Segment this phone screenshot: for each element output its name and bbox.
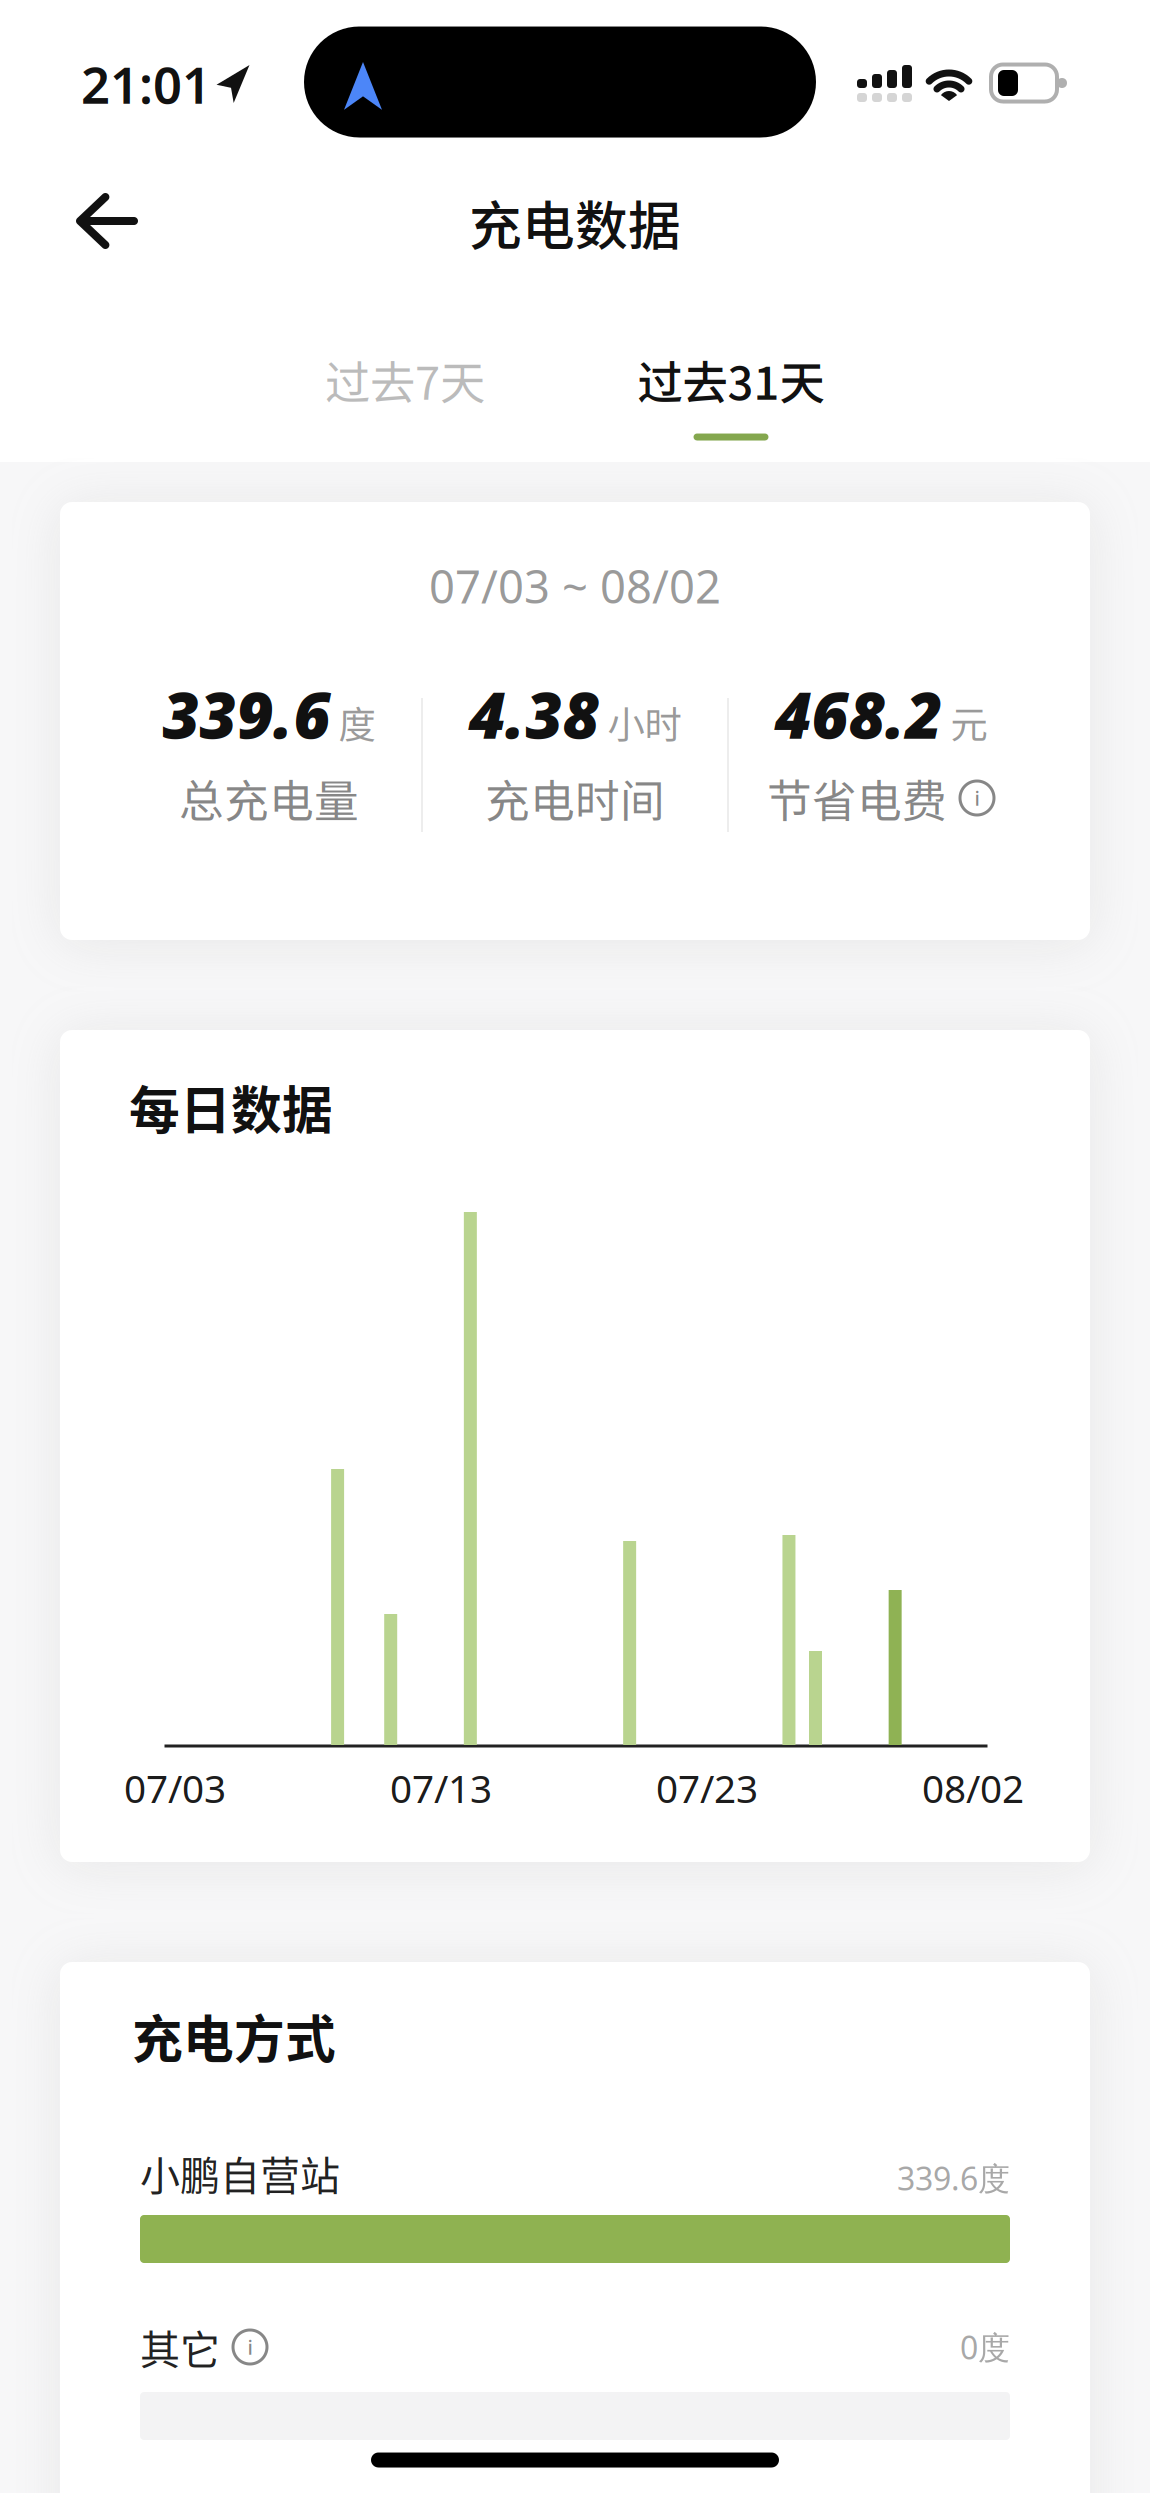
button[interactable]: 过去7天 — [325, 347, 485, 413]
staticText: 过去7天 — [325, 347, 485, 413]
staticText: 充电数据 — [469, 184, 681, 260]
staticText: 总充电量 — [179, 766, 359, 830]
button[interactable]: About other charging — [232, 2329, 268, 2365]
staticText: 充电方式 — [132, 1999, 336, 2073]
staticText: 其它 — [140, 2318, 220, 2376]
button[interactable]: About saved cost — [959, 780, 995, 816]
staticText: 小时 — [607, 695, 681, 750]
staticText: 08/02 — [922, 1762, 1024, 1814]
staticText: i — [974, 785, 979, 811]
staticText: i — [247, 2334, 252, 2360]
staticText: 07/03 ~ 08/02 — [429, 556, 721, 616]
staticText: 节省电费 — [767, 766, 947, 830]
staticText: 充电时间 — [485, 766, 665, 830]
staticText: 小鹏自营站 — [140, 2144, 340, 2202]
staticText: 过去31天 — [637, 347, 824, 413]
staticText: 339.6度 — [897, 2157, 1010, 2199]
staticText: 339.6 — [162, 670, 330, 758]
staticText: 07/23 — [656, 1762, 758, 1814]
staticText: 0度 — [960, 2326, 1010, 2368]
button[interactable]: 过去31天 — [637, 347, 824, 413]
staticText: 07/13 — [390, 1762, 492, 1814]
staticText: 4.38 — [468, 670, 599, 758]
button[interactable]: Back — [60, 177, 154, 265]
staticText: 度 — [338, 695, 375, 750]
staticText: 21:01 — [81, 50, 211, 118]
staticText: 元 — [950, 695, 987, 750]
staticText: 468.2 — [774, 670, 942, 758]
staticText: 07/03 — [124, 1762, 226, 1814]
staticText: 每日数据 — [129, 1070, 333, 1144]
